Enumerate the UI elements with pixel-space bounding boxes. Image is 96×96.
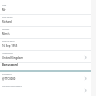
staticText: Men's: [2, 32, 10, 36]
staticText: Date of birth: [2, 40, 15, 43]
button[interactable]: Nationality: [0, 51, 91, 63]
button[interactable]: Title: [0, 3, 91, 15]
staticText: Title: [2, 4, 7, 7]
other: Edit: [83, 76, 88, 81]
button[interactable]: Confirm bonusword: [0, 84, 91, 96]
staticText: @TTC0000: [2, 77, 16, 81]
staticText: Password: [2, 73, 12, 76]
button[interactable]: Password: [0, 72, 91, 84]
button[interactable]: Gender: [0, 27, 91, 39]
staticText: Richard: [2, 20, 12, 24]
staticText: Bonusword: [2, 63, 18, 67]
staticText: Confirm bonusword: [2, 85, 22, 88]
button[interactable]: First name: [0, 15, 91, 27]
staticText: Nationality: [2, 52, 13, 55]
staticText: 16 Sep 1955: [2, 44, 18, 48]
staticText: First name: [2, 16, 13, 19]
staticText: Gender: [2, 28, 10, 31]
other: Edit: [83, 55, 88, 60]
staticText: United Kingdom: [2, 56, 23, 60]
staticText: Mr: [2, 8, 6, 12]
button[interactable]: Date of birth: [0, 39, 91, 51]
other: Edit: [83, 88, 88, 93]
